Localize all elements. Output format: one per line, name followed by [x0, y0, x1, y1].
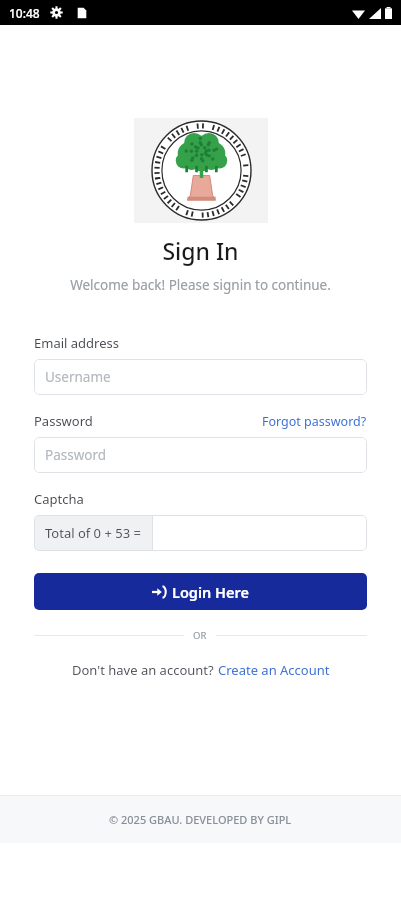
staticText: Total of 0 + 53 =	[45, 524, 141, 542]
button[interactable]: Password	[34, 437, 367, 473]
staticText: © 2025 GBAU. DEVELOPED BY GIPL	[109, 812, 292, 827]
staticText: Welcome back! Please signin to continue.	[0, 276, 401, 294]
staticText: Captcha	[34, 490, 84, 508]
staticText: Create an Account	[218, 661, 330, 679]
staticText: Email address	[34, 334, 119, 352]
staticText: OR	[193, 629, 207, 642]
staticText: Password	[45, 446, 107, 464]
button[interactable]	[153, 515, 367, 551]
staticText: Don't have an account?	[72, 661, 218, 679]
staticText: 10:48	[9, 5, 40, 21]
button[interactable]: Create an Account	[218, 661, 330, 679]
staticText: Login Here	[172, 582, 249, 602]
button[interactable]: Login Here	[34, 573, 367, 610]
button[interactable]: Forgot password?	[262, 413, 367, 430]
staticText: Sign In	[0, 235, 401, 266]
button[interactable]: Username	[34, 359, 367, 395]
staticText: Username	[45, 368, 111, 386]
staticText: Password	[34, 412, 93, 430]
staticText: Forgot password?	[262, 413, 367, 430]
